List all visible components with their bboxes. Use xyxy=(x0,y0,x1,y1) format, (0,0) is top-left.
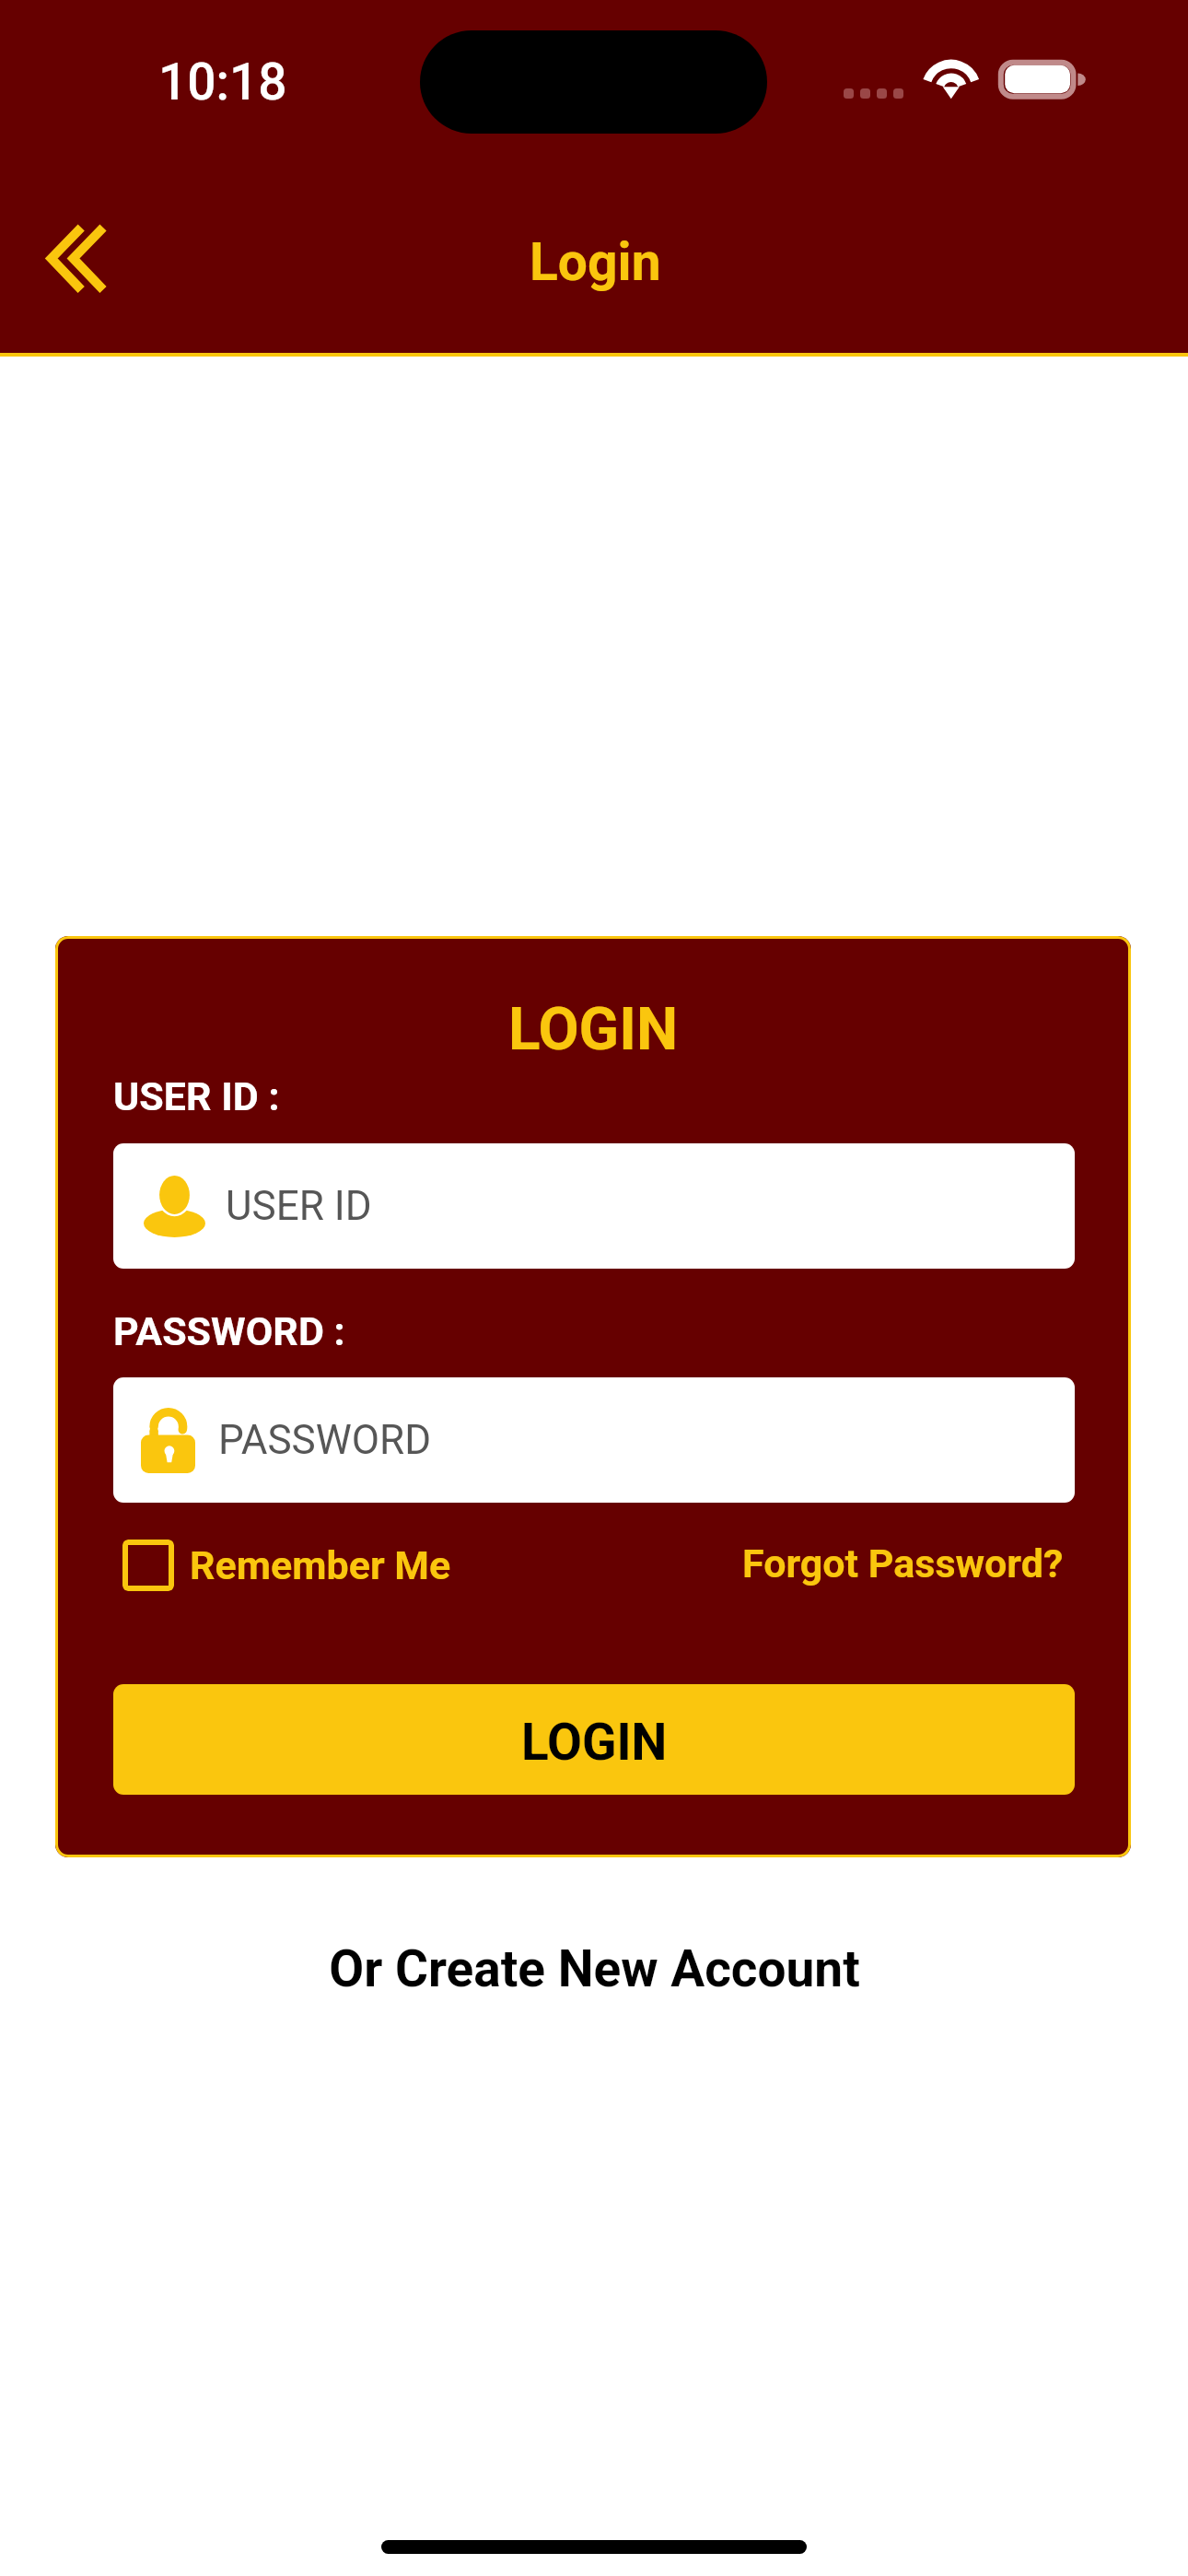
staticText: USER ID : xyxy=(113,1073,280,1119)
button[interactable]: USER ID xyxy=(113,1143,1075,1269)
staticText: Login xyxy=(530,231,661,293)
staticText: LOGIN xyxy=(55,995,1131,1064)
staticText: LOGIN xyxy=(521,1713,668,1772)
button[interactable]: LOGIN xyxy=(113,1684,1075,1795)
staticText: PASSWORD xyxy=(218,1416,432,1464)
staticText: Remember Me xyxy=(190,1542,451,1588)
staticText: Or Create New Account xyxy=(329,1939,860,1998)
button[interactable]: Back xyxy=(0,184,157,332)
button[interactable]: Forgot Password? xyxy=(742,1540,1064,1587)
button[interactable]: Remember Me xyxy=(122,1535,451,1596)
staticText: PASSWORD : xyxy=(113,1308,345,1354)
button[interactable]: PASSWORD xyxy=(113,1377,1075,1503)
staticText: 10:18 xyxy=(158,53,287,111)
button[interactable]: Or Create New Account xyxy=(318,1931,870,2005)
staticText: USER ID xyxy=(226,1182,372,1230)
